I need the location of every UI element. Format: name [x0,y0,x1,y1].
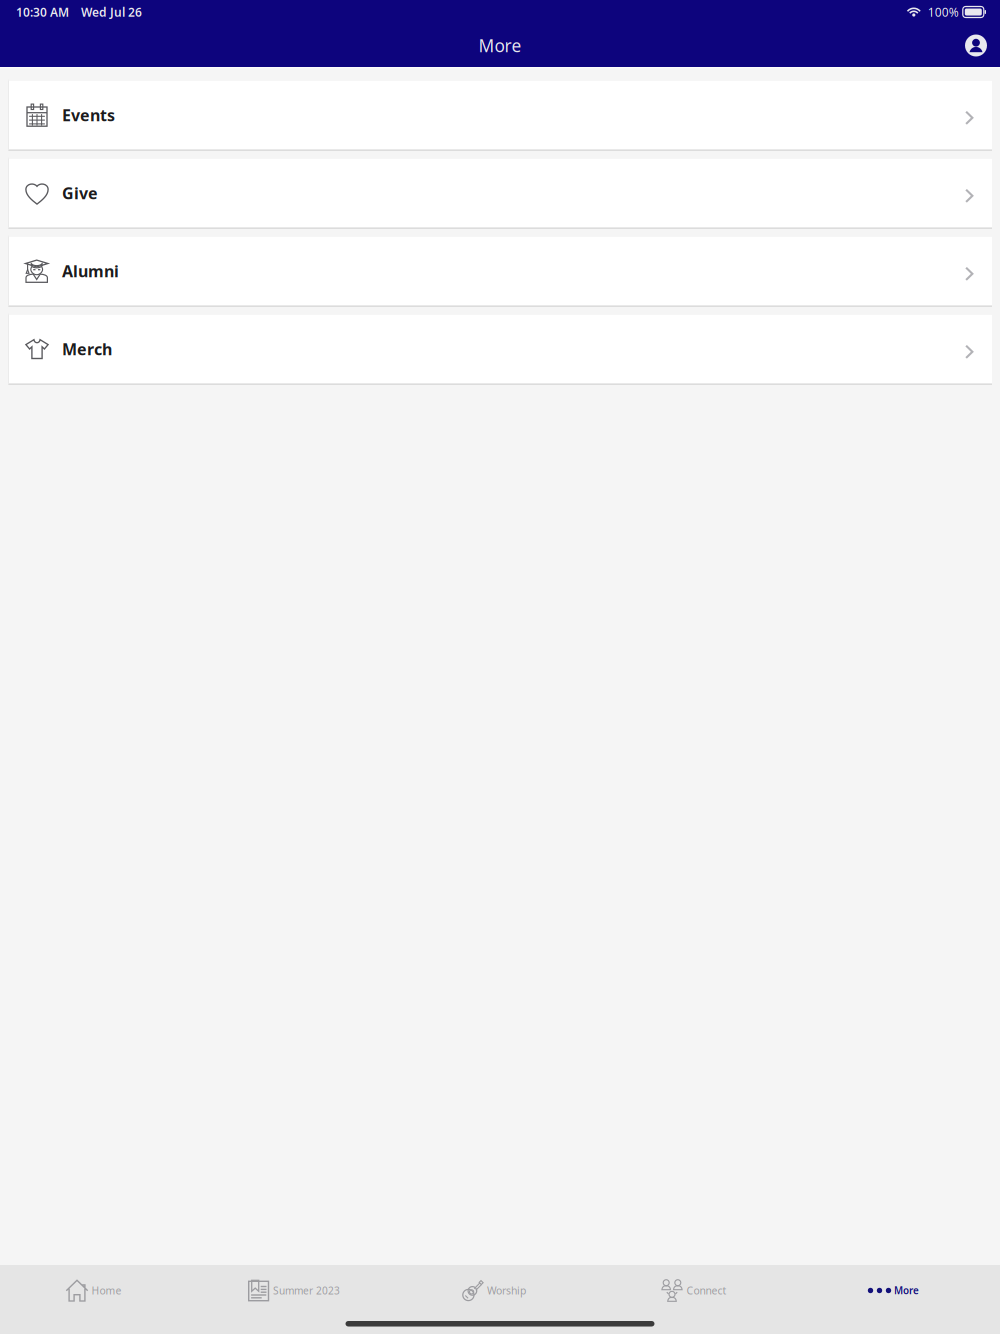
staticText: Merch [62,338,112,360]
button[interactable]: Account [956,25,996,65]
staticText: 10:30 AM [16,4,69,20]
staticText: Events [62,104,115,126]
staticText: Wed Jul 26 [81,4,142,20]
staticText: Worship [487,1283,526,1298]
staticText: More [894,1284,919,1297]
staticText: Connect [686,1283,726,1298]
staticText: Home [91,1283,121,1298]
button[interactable]: Merch [8,314,992,385]
staticText: Alumni [62,260,119,282]
staticText: Summer 2023 [273,1284,340,1297]
button[interactable]: Alumni [8,236,992,307]
staticText: More [478,34,521,57]
staticText: 100% [928,4,959,20]
button[interactable]: Connect [600,1265,800,1317]
button[interactable]: Worship [400,1265,600,1317]
button[interactable]: Events [8,80,992,151]
staticText: Give [62,182,98,204]
button[interactable]: Give [8,158,992,229]
button[interactable]: Summer 2023 [200,1265,400,1317]
button[interactable]: More [800,1265,1000,1317]
button[interactable]: Home [0,1265,200,1317]
